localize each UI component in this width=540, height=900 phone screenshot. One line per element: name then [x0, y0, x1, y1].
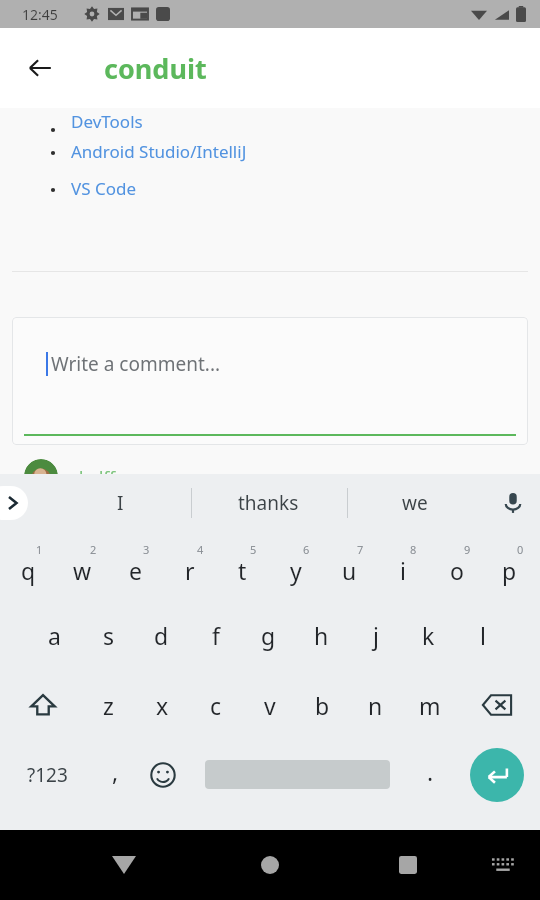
button[interactable]: i — [376, 532, 429, 600]
staticText: m — [419, 690, 441, 721]
staticText: s — [103, 620, 115, 651]
button[interactable]: ?123 — [12, 740, 82, 810]
staticText: 8 — [410, 542, 417, 557]
staticText: e — [129, 555, 142, 586]
button[interactable]: s — [82, 600, 135, 670]
staticText: Write a comment... — [51, 351, 221, 377]
staticText: 2 — [90, 542, 97, 557]
staticText: a — [48, 620, 61, 651]
button[interactable]: z — [82, 670, 135, 740]
staticText: n — [368, 690, 383, 721]
button[interactable]: More suggestions — [0, 486, 28, 520]
button[interactable]: f — [189, 600, 242, 670]
staticText: w — [73, 555, 92, 586]
staticText: h — [314, 620, 329, 651]
button[interactable]: Android Studio/IntelliJ — [0, 140, 540, 177]
staticText: y — [290, 555, 302, 586]
staticText: t — [238, 555, 247, 586]
staticText: VS Code — [71, 177, 137, 200]
staticText: . — [427, 756, 434, 787]
button[interactable]: m — [403, 670, 456, 740]
button[interactable]: Shift — [16, 670, 70, 740]
staticText: i — [400, 555, 406, 586]
staticText: r — [185, 555, 195, 586]
staticText: DevTools — [71, 110, 143, 133]
staticText: k — [422, 620, 435, 651]
staticText: 4 — [197, 542, 204, 557]
staticText: l — [480, 620, 486, 651]
button[interactable]: thanks — [196, 474, 341, 532]
button[interactable]: Write a comment... — [12, 317, 528, 445]
staticText: f — [212, 620, 220, 651]
button[interactable]: c — [189, 670, 242, 740]
button[interactable]: Back — [12, 40, 68, 96]
button[interactable]: t — [216, 532, 269, 600]
button[interactable]: I — [60, 474, 180, 532]
button[interactable]: u — [323, 532, 376, 600]
staticText: we — [402, 490, 428, 516]
button[interactable]: rhalff — [24, 459, 540, 493]
button[interactable]: a — [28, 600, 81, 670]
staticText: 3 — [143, 542, 150, 557]
staticText: conduit — [104, 50, 207, 87]
button[interactable]: DevTools — [0, 110, 540, 140]
button[interactable]: y — [269, 532, 322, 600]
button[interactable]: l — [456, 600, 509, 670]
button[interactable]: r — [163, 532, 216, 600]
button[interactable]: Switch keyboard — [478, 840, 528, 890]
staticText: ?123 — [27, 762, 68, 788]
staticText: 0 — [517, 542, 524, 557]
button[interactable]: b — [296, 670, 349, 740]
staticText: rhalff — [72, 465, 116, 488]
button[interactable]: Hide keyboard — [96, 837, 152, 893]
button[interactable]: Emoji — [138, 740, 188, 810]
staticText: Android Studio/IntelliJ — [71, 140, 247, 163]
staticText: b — [315, 690, 330, 721]
staticText: q — [21, 555, 36, 586]
button[interactable]: Backspace — [470, 670, 524, 740]
button[interactable]: e — [109, 532, 162, 600]
staticText: thanks — [238, 490, 299, 516]
staticText: z — [103, 690, 114, 721]
staticText: v — [264, 690, 276, 721]
staticText: u — [342, 555, 357, 586]
staticText: x — [156, 690, 169, 721]
staticText: j — [373, 620, 379, 651]
button[interactable]: d — [135, 600, 188, 670]
staticText: , — [112, 756, 119, 787]
staticText: 9 — [464, 542, 471, 557]
staticText: g — [261, 620, 276, 651]
button[interactable]: q — [2, 532, 55, 600]
button[interactable]: v — [243, 670, 296, 740]
staticText: 5 — [250, 542, 257, 557]
button[interactable]: j — [349, 600, 402, 670]
button[interactable]: p — [483, 532, 536, 600]
button[interactable]: h — [295, 600, 348, 670]
staticText: 6 — [303, 542, 310, 557]
button[interactable]: n — [349, 670, 402, 740]
staticText: p — [502, 555, 517, 586]
button[interactable]: k — [402, 600, 455, 670]
button[interactable]: Home — [242, 837, 298, 893]
button[interactable]: we — [352, 474, 477, 532]
button[interactable]: Voice input — [486, 474, 540, 532]
staticText: 1 — [36, 542, 43, 557]
button[interactable]: Enter — [470, 748, 524, 802]
staticText: d — [154, 620, 169, 651]
button[interactable]: Recents — [380, 837, 436, 893]
button[interactable]: x — [136, 670, 189, 740]
staticText: c — [210, 690, 222, 721]
staticText: o — [450, 555, 464, 586]
staticText: I — [117, 490, 124, 516]
button[interactable]: w — [56, 532, 109, 600]
button[interactable]: Period — [405, 740, 455, 810]
button[interactable]: VS Code — [0, 177, 540, 214]
button[interactable]: o — [430, 532, 483, 600]
button[interactable]: Comma — [90, 740, 140, 810]
button[interactable]: g — [242, 600, 295, 670]
staticText: 12:45 — [22, 5, 58, 24]
staticText: 7 — [357, 542, 364, 557]
